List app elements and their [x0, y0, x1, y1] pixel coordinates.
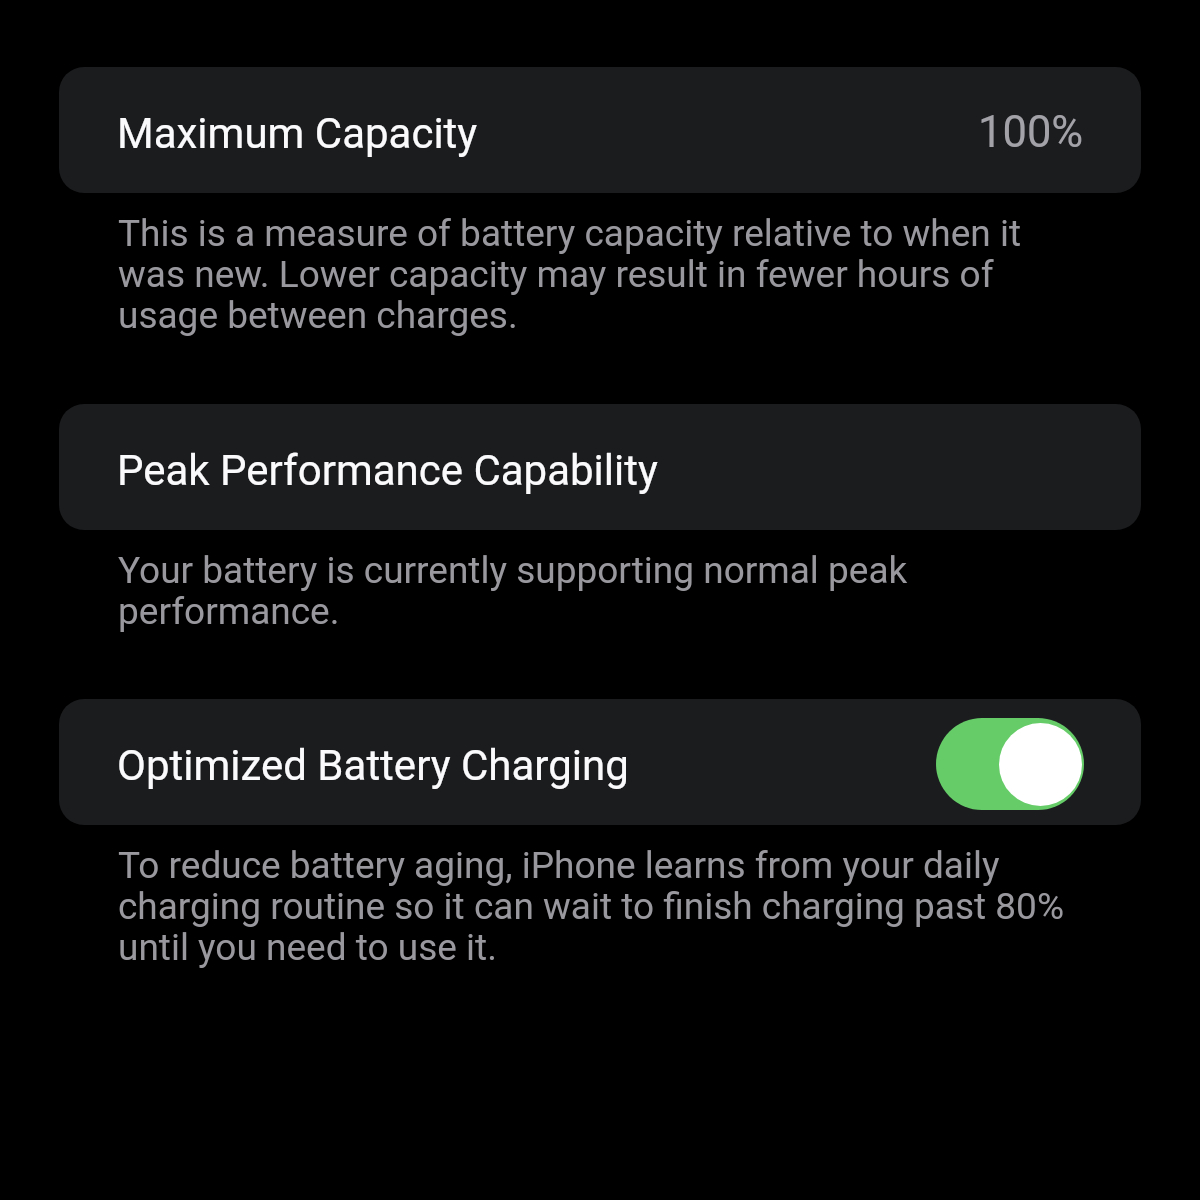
staticText: Optimized Battery Charging [117, 742, 936, 790]
staticText: To reduce battery aging, iPhone learns f… [118, 846, 1141, 969]
staticText: 100% [978, 109, 1084, 157]
button[interactable]: Optimized Battery Charging [936, 718, 1084, 810]
button[interactable]: Maximum Capacity [59, 67, 1141, 193]
button[interactable]: Peak Performance Capability [59, 404, 1141, 530]
staticText: This is a measure of battery capacity re… [118, 214, 1141, 337]
button[interactable]: Optimized Battery Charging [59, 699, 1141, 825]
staticText: Peak Performance Capability [117, 447, 1084, 495]
staticText: Your battery is currently supporting nor… [118, 551, 1141, 633]
staticText: Maximum Capacity [117, 110, 978, 158]
